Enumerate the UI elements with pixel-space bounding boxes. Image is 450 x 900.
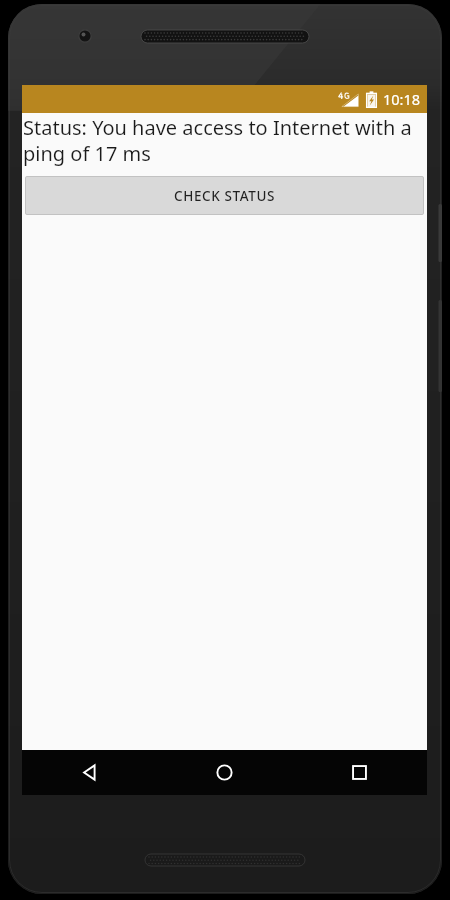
button[interactable]: Recent apps [292,750,427,795]
staticText: Status: You have access to Internet with… [23,114,425,167]
button[interactable]: CHECK STATUS [25,176,424,215]
button[interactable]: Home [157,750,292,795]
button[interactable]: Back [22,750,157,795]
staticText: CHECK STATUS [174,187,275,205]
staticText: 10:18 [383,89,421,109]
